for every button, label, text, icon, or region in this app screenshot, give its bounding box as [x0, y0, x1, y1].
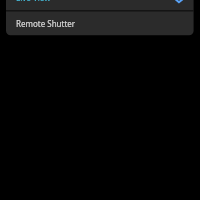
button[interactable]: Remote Shutter: [6, 11, 194, 35]
other: Selected, Live View: [174, 0, 193, 5]
staticText: Live View: [16, 0, 51, 3]
button[interactable]: Live View: [6, 0, 194, 10]
staticText: Remote Shutter: [16, 18, 76, 29]
